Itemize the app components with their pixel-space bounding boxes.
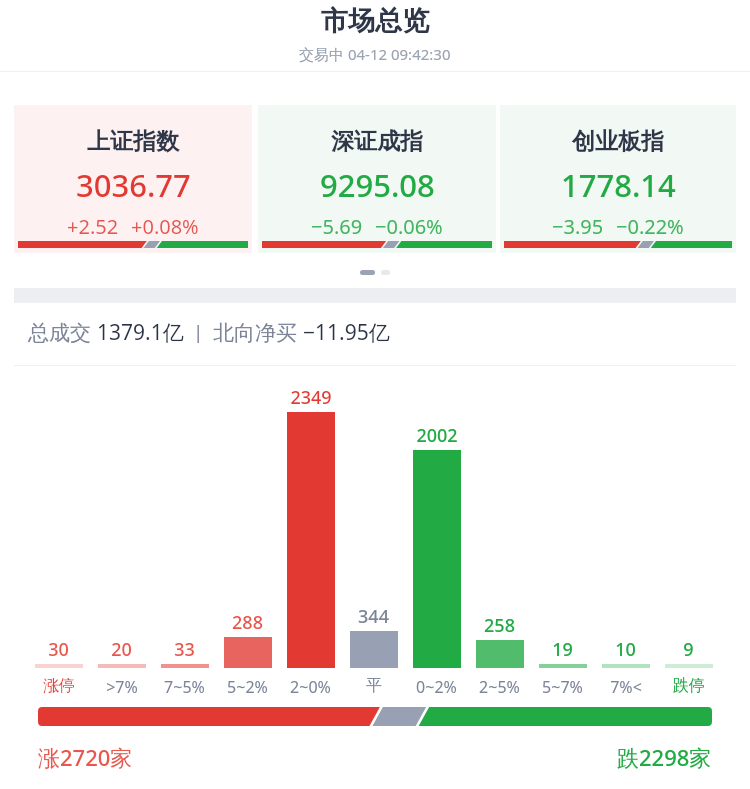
staticText: 3036.77	[76, 164, 191, 206]
staticText: 19	[552, 637, 573, 662]
staticText: 7%<	[610, 676, 642, 698]
staticText: 涨2720家	[38, 742, 133, 772]
staticText: −0.22%	[616, 213, 684, 240]
button[interactable]: 5~7%	[531, 676, 594, 698]
staticText: +2.52	[67, 213, 119, 240]
staticText: 创业板指	[572, 127, 664, 156]
staticText: 344	[358, 604, 389, 629]
staticText: −3.95	[552, 213, 604, 240]
staticText: 2~5%	[479, 676, 520, 698]
staticText: 9295.08	[320, 164, 435, 206]
button[interactable]: 深证成指	[258, 105, 496, 253]
staticText: 交易中 04-12 09:42:30	[299, 44, 451, 64]
staticText: 跌2298家	[617, 742, 712, 772]
staticText: 7~5%	[164, 676, 205, 698]
button[interactable]: 平	[342, 676, 405, 696]
staticText: 288	[232, 610, 263, 635]
staticText: −0.06%	[375, 213, 443, 240]
staticText: 市场总览	[321, 4, 429, 38]
staticText: 1379.1亿	[97, 318, 184, 347]
staticText: 9	[683, 637, 694, 662]
staticText: 10	[615, 637, 636, 662]
button[interactable]: 7%<	[594, 676, 657, 698]
staticText: 5~2%	[227, 676, 268, 698]
button[interactable]: 7~5%	[153, 676, 216, 698]
staticText: 2002	[416, 423, 458, 448]
button[interactable]: 涨跌家数占比	[38, 707, 712, 726]
staticText: 1778.14	[561, 164, 676, 206]
staticText: 北向净买	[213, 318, 303, 347]
staticText: 上证指数	[87, 127, 179, 156]
button[interactable]: 涨停	[27, 676, 90, 696]
staticText: 33	[174, 637, 195, 662]
staticText: −5.69	[311, 213, 363, 240]
button[interactable]: 2~5%	[468, 676, 531, 698]
staticText: 深证成指	[331, 127, 423, 156]
button[interactable]: 总成交	[28, 318, 390, 347]
staticText: 0~2%	[416, 676, 457, 698]
button[interactable]: 上证指数	[14, 105, 252, 253]
staticText: 2~0%	[290, 676, 331, 698]
staticText: 2349	[290, 385, 332, 410]
staticText: 20	[111, 637, 132, 662]
staticText: 5~7%	[542, 676, 583, 698]
staticText: +0.08%	[131, 213, 199, 240]
button[interactable]: 0~2%	[405, 676, 468, 698]
staticText: 平	[366, 676, 382, 696]
staticText: 总成交	[28, 318, 97, 347]
staticText: |	[184, 320, 213, 345]
button[interactable]: >7%	[90, 676, 153, 698]
button[interactable]: 2~0%	[279, 676, 342, 698]
staticText: 跌停	[673, 676, 705, 696]
button[interactable]: 创业板指	[500, 105, 736, 253]
button[interactable]: 跌停	[657, 676, 720, 696]
staticText: 30	[48, 637, 69, 662]
staticText: 258	[484, 613, 515, 638]
staticText: >7%	[106, 676, 138, 698]
staticText: −11.95亿	[303, 318, 390, 347]
button[interactable]: 5~2%	[216, 676, 279, 698]
staticText: 涨停	[43, 676, 75, 696]
